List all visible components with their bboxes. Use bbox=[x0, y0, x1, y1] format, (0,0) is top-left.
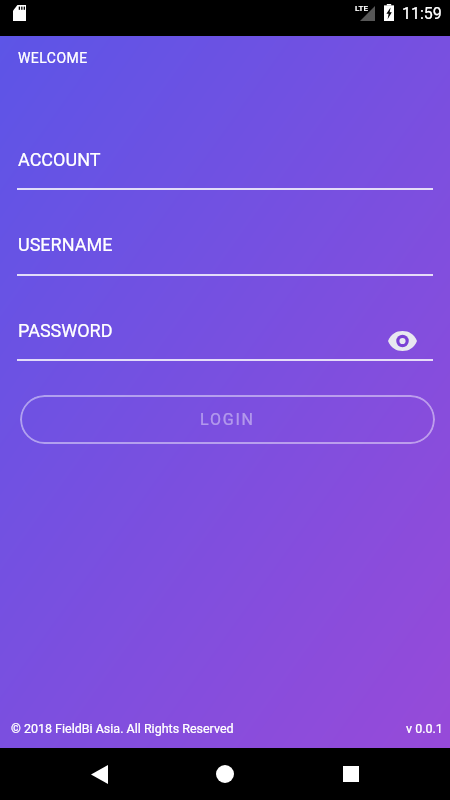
staticText: USERNAME bbox=[18, 234, 113, 255]
staticText: 11:59 bbox=[402, 4, 442, 23]
button[interactable]: Home bbox=[195, 748, 255, 800]
staticText: ACCOUNT bbox=[18, 149, 101, 170]
button[interactable]: Recent apps bbox=[321, 748, 381, 800]
staticText: LTE bbox=[355, 4, 368, 13]
button[interactable]: Show password bbox=[384, 323, 420, 359]
staticText: PASSWORD bbox=[18, 320, 113, 341]
staticText: v 0.0.1 bbox=[406, 721, 443, 736]
button[interactable]: Back bbox=[69, 748, 129, 800]
staticText: WELCOME bbox=[18, 50, 88, 66]
button[interactable]: LOGIN bbox=[20, 395, 435, 444]
staticText: © 2018 FieldBi Asia. All Rights Reserved bbox=[11, 721, 234, 736]
staticText: LOGIN bbox=[200, 410, 255, 429]
